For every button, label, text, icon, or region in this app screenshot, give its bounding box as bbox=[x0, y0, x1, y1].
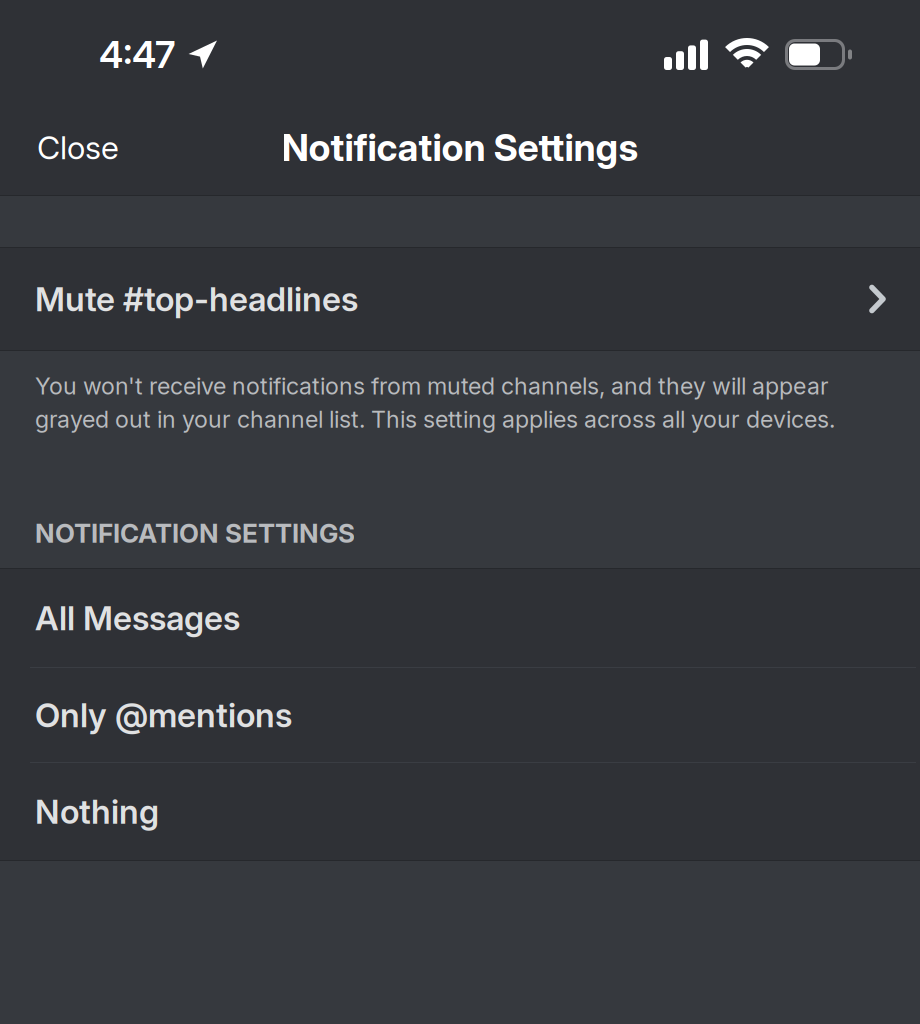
button[interactable]: Mute #top-headlines bbox=[0, 248, 920, 350]
staticText: You won't receive notifications from mut… bbox=[35, 372, 835, 433]
staticText: All Messages bbox=[35, 598, 240, 638]
staticText: Only @mentions bbox=[35, 695, 292, 735]
button[interactable]: All Messages bbox=[0, 569, 920, 668]
staticText: 4:47 bbox=[99, 32, 175, 77]
staticText: Close bbox=[37, 128, 119, 167]
staticText: Notification Settings bbox=[281, 125, 638, 170]
button[interactable]: Close bbox=[0, 100, 187, 195]
button[interactable]: Nothing bbox=[0, 763, 920, 860]
staticText: Mute #top-headlines bbox=[35, 279, 358, 319]
staticText: Nothing bbox=[35, 791, 159, 832]
button[interactable]: Only @mentions bbox=[0, 668, 920, 763]
staticText: NOTIFICATION SETTINGS bbox=[35, 517, 355, 549]
